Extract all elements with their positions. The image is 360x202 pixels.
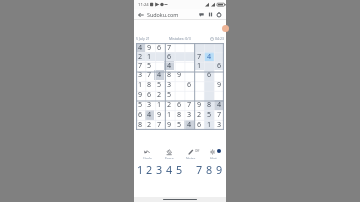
button[interactable]: 1 bbox=[136, 80, 145, 90]
button[interactable] bbox=[214, 52, 224, 61]
button[interactable]: 5 bbox=[174, 120, 184, 130]
button[interactable]: 8 bbox=[145, 80, 154, 90]
button[interactable]: 2 bbox=[145, 162, 154, 175]
button[interactable]: 6 bbox=[154, 43, 164, 52]
button[interactable]: 4 bbox=[164, 61, 174, 70]
button[interactable]: 5 bbox=[154, 80, 164, 90]
button[interactable]: 2 bbox=[154, 90, 164, 100]
button[interactable] bbox=[214, 70, 224, 80]
button[interactable]: 4 bbox=[145, 110, 154, 120]
button[interactable]: 1 bbox=[194, 61, 204, 70]
button[interactable]: 9 bbox=[194, 100, 204, 110]
button[interactable] bbox=[214, 43, 224, 52]
button[interactable] bbox=[184, 90, 194, 100]
button[interactable]: 4 bbox=[154, 70, 164, 80]
button[interactable]: 2 bbox=[164, 100, 174, 110]
button[interactable] bbox=[174, 61, 184, 70]
button[interactable]: 6 bbox=[145, 90, 154, 100]
button[interactable]: 6 bbox=[194, 120, 204, 130]
button[interactable] bbox=[214, 90, 224, 100]
button[interactable] bbox=[204, 43, 214, 52]
button[interactable] bbox=[194, 90, 204, 100]
button[interactable]: 6 bbox=[204, 70, 214, 80]
staticText: 4 bbox=[166, 162, 173, 175]
button[interactable]: 3 bbox=[164, 80, 174, 90]
button[interactable]: 8 bbox=[136, 120, 145, 130]
button[interactable]: Hint bbox=[202, 148, 224, 159]
button[interactable]: 9 bbox=[164, 120, 174, 130]
button[interactable]: 8 bbox=[204, 162, 214, 175]
button[interactable]: Reader mode bbox=[197, 9, 205, 20]
button[interactable] bbox=[174, 43, 184, 52]
button[interactable]: 7 bbox=[136, 61, 145, 70]
button[interactable]: 6 bbox=[164, 52, 174, 61]
button[interactable] bbox=[194, 70, 204, 80]
button[interactable]: 2 bbox=[194, 110, 204, 120]
button[interactable] bbox=[184, 61, 194, 70]
button[interactable]: 9 bbox=[214, 80, 224, 90]
button[interactable]: 7 bbox=[154, 120, 164, 130]
button[interactable]: Back bbox=[137, 9, 145, 20]
button[interactable]: Erase bbox=[158, 148, 180, 159]
button[interactable]: 3 bbox=[145, 100, 154, 110]
button[interactable]: 9 bbox=[145, 43, 154, 52]
button[interactable]: 9 bbox=[174, 70, 184, 80]
button[interactable]: 3 bbox=[184, 110, 194, 120]
button[interactable]: 3 bbox=[154, 162, 164, 175]
button[interactable]: 1 bbox=[154, 100, 164, 110]
button[interactable] bbox=[194, 43, 204, 52]
button[interactable]: 4 bbox=[184, 120, 194, 130]
button[interactable]: 7 bbox=[214, 110, 224, 120]
button[interactable]: 7 bbox=[194, 162, 204, 175]
button[interactable] bbox=[174, 80, 184, 90]
button[interactable] bbox=[184, 43, 194, 52]
button[interactable]: 4 bbox=[204, 52, 214, 61]
button[interactable]: 5 bbox=[136, 100, 145, 110]
button[interactable]: 6 bbox=[136, 110, 145, 120]
button[interactable] bbox=[174, 90, 184, 100]
button[interactable]: 4 bbox=[136, 43, 145, 52]
button[interactable] bbox=[184, 70, 194, 80]
button[interactable]: 3 bbox=[136, 70, 145, 80]
button[interactable] bbox=[194, 80, 204, 90]
button[interactable]: 9 bbox=[136, 90, 145, 100]
button[interactable]: Undo bbox=[136, 148, 158, 159]
button[interactable]: Off bbox=[180, 148, 202, 159]
button[interactable]: 9 bbox=[154, 110, 164, 120]
button[interactable]: 8 bbox=[174, 110, 184, 120]
button[interactable]: 2 bbox=[136, 52, 145, 61]
button[interactable]: 7 bbox=[194, 52, 204, 61]
button[interactable]: 1 bbox=[164, 110, 174, 120]
button[interactable]: 6 bbox=[174, 100, 184, 110]
button[interactable]: 8 bbox=[164, 70, 174, 80]
button[interactable]: 1 bbox=[145, 52, 154, 61]
button[interactable] bbox=[154, 61, 164, 70]
button[interactable]: 7 bbox=[184, 100, 194, 110]
staticText: 4 bbox=[187, 119, 192, 129]
button[interactable]: 1 bbox=[136, 162, 145, 175]
button[interactable]: 4 bbox=[214, 100, 224, 110]
button[interactable]: 4 bbox=[164, 162, 174, 175]
button[interactable]: 7 bbox=[145, 70, 154, 80]
button[interactable]: 6 bbox=[184, 80, 194, 90]
button[interactable]: 5 bbox=[204, 110, 214, 120]
button[interactable]: 1 bbox=[204, 120, 214, 130]
button[interactable]: 5 bbox=[174, 162, 184, 175]
button[interactable]: 7 bbox=[164, 43, 174, 52]
button[interactable]: 2 bbox=[145, 120, 154, 130]
button[interactable]: 8 bbox=[204, 100, 214, 110]
button[interactable]: 3 bbox=[214, 120, 224, 130]
button[interactable]: 5 bbox=[145, 61, 154, 70]
button[interactable]: 5 bbox=[164, 90, 174, 100]
button[interactable]: Settings bbox=[215, 9, 223, 20]
button[interactable]: 6 bbox=[214, 61, 224, 70]
button[interactable]: Pause bbox=[206, 9, 214, 20]
button[interactable]: 9 bbox=[214, 162, 224, 175]
